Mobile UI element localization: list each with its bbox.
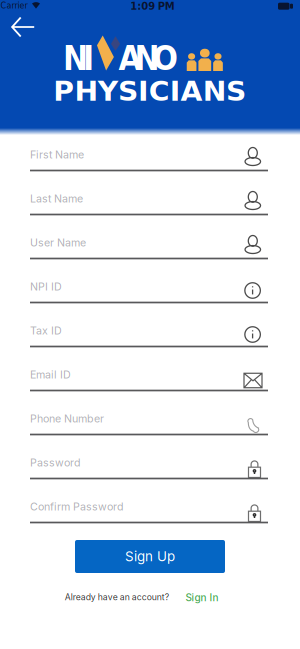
button[interactable]: Confirm Password bbox=[30, 487, 268, 524]
staticText: Confirm Password bbox=[30, 500, 124, 513]
button[interactable]: User Name bbox=[30, 223, 268, 260]
button[interactable]: Tax ID bbox=[30, 311, 268, 348]
staticText: PHYSICIANS bbox=[59, 76, 241, 107]
button[interactable]: Sign Up bbox=[75, 540, 225, 573]
button[interactable]: Sign In bbox=[185, 591, 218, 604]
button[interactable]: Email ID bbox=[30, 355, 268, 392]
staticText: Tax ID bbox=[30, 324, 62, 337]
button[interactable]: NPI ID bbox=[30, 267, 268, 304]
staticText: Phone Number bbox=[30, 412, 104, 425]
staticText: Sign In bbox=[185, 591, 218, 604]
staticText: Email ID bbox=[30, 368, 71, 381]
button[interactable]: Back bbox=[11, 17, 34, 36]
staticText: Last Name bbox=[30, 192, 83, 205]
button[interactable]: Last Name bbox=[30, 179, 268, 216]
button[interactable]: First Name bbox=[30, 135, 268, 172]
staticText: N bbox=[63, 39, 88, 78]
staticText: NPI ID bbox=[30, 280, 62, 293]
staticText: First Name bbox=[30, 148, 84, 161]
staticText: O bbox=[152, 39, 177, 78]
staticText: 1:09 bbox=[130, 0, 155, 12]
button[interactable]: Phone Number bbox=[30, 399, 268, 436]
staticText: A bbox=[118, 39, 141, 78]
staticText: Sign Up bbox=[125, 548, 175, 564]
staticText: Carrier bbox=[0, 1, 27, 10]
staticText: User Name bbox=[30, 236, 86, 249]
staticText: Already have an account? bbox=[65, 592, 169, 602]
button[interactable]: Password bbox=[30, 443, 268, 480]
staticText: I bbox=[83, 39, 94, 78]
staticText: PM bbox=[158, 0, 175, 12]
staticText: N bbox=[134, 39, 159, 78]
staticText: Password bbox=[30, 456, 81, 469]
